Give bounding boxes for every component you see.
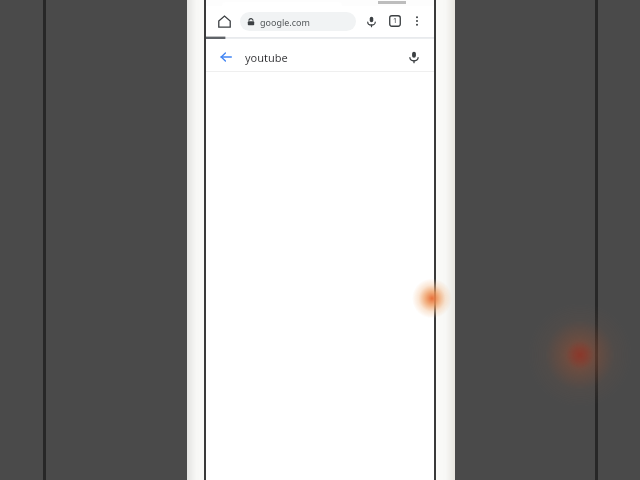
- button[interactable]: Tabs: [384, 10, 406, 32]
- button[interactable]: Back: [216, 47, 236, 67]
- staticText: google.com: [260, 16, 310, 28]
- staticText: 1: [393, 16, 398, 26]
- button[interactable]: Voice search: [360, 10, 382, 32]
- button[interactable]: Voice input: [404, 47, 424, 67]
- button[interactable]: google.com: [240, 12, 356, 31]
- button[interactable]: More options: [407, 11, 427, 31]
- button[interactable]: Home: [213, 10, 235, 32]
- staticText: youtube studio.com desktop s: [245, 50, 324, 65]
- button[interactable]: Back: [206, 43, 434, 71]
